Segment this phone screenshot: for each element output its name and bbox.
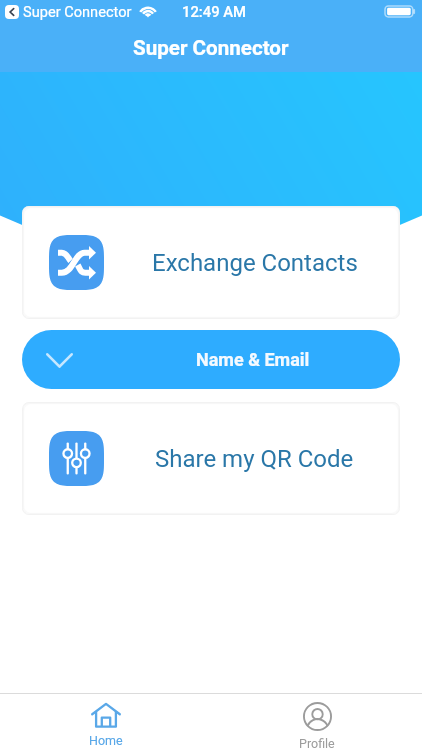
staticText: Name & Email bbox=[196, 349, 310, 370]
button[interactable]: Home bbox=[0, 694, 211, 750]
staticText: Super Connector bbox=[23, 3, 132, 20]
staticText: Super Connector bbox=[133, 36, 289, 60]
staticText: Home bbox=[89, 733, 123, 748]
button[interactable]: Back bbox=[5, 5, 19, 19]
button[interactable]: Exchange Contacts bbox=[22, 206, 400, 319]
button[interactable]: Name & Email bbox=[22, 330, 400, 389]
staticText: Share my QR Code bbox=[155, 445, 354, 473]
staticText: Exchange Contacts bbox=[152, 249, 358, 277]
button[interactable]: Share my QR Code bbox=[22, 402, 400, 515]
staticText: 12:49 AM bbox=[182, 3, 247, 20]
staticText: Profile bbox=[299, 736, 335, 750]
button[interactable]: Profile bbox=[211, 694, 422, 750]
